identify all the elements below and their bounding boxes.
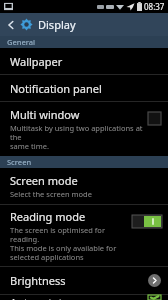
staticText: General [7, 37, 36, 47]
button[interactable]: Wallpaper [0, 48, 168, 74]
button[interactable]: Brightness [0, 267, 168, 294]
staticText: Notification panel [10, 81, 102, 96]
staticText: 08:37 [144, 1, 165, 12]
other: Open brightness [148, 274, 161, 287]
other: Back [5, 19, 17, 31]
staticText: Reading mode [10, 209, 86, 224]
button[interactable]: Auto rotate screen [0, 295, 168, 300]
button[interactable]: Reading mode [0, 205, 168, 266]
staticText: Screen [7, 157, 32, 167]
staticText: Multi window [10, 107, 80, 122]
staticText: Brightness [10, 273, 148, 288]
button[interactable]: Notification panel [0, 75, 168, 101]
button[interactable]: Screen mode [0, 168, 168, 204]
staticText: Screen mode [10, 173, 78, 188]
staticText: The screen is optimised for reading. Thi… [10, 225, 129, 262]
staticText: Select the screen mode [10, 189, 92, 199]
staticText: Display [38, 17, 76, 32]
button[interactable]: Multi window [0, 102, 168, 156]
staticText: Wallpaper [10, 54, 63, 69]
other: Reading mode toggle [132, 215, 162, 228]
staticText: Auto rotate screen [10, 295, 148, 300]
staticText: Multitask by using two applications at t… [10, 123, 144, 151]
button[interactable]: Back [0, 13, 168, 36]
